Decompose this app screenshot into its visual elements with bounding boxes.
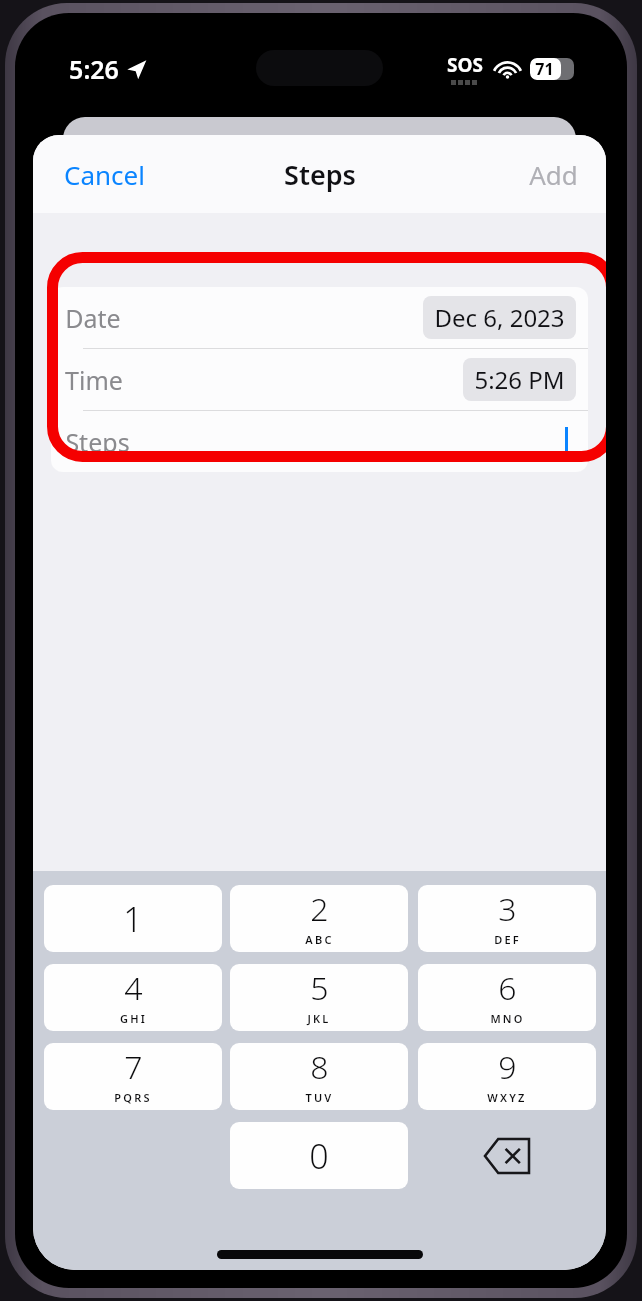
button[interactable]: 6 [418, 964, 596, 1031]
staticText: SOS [447, 52, 483, 78]
button[interactable]: 9 [418, 1043, 596, 1110]
staticText: MNO [490, 1011, 525, 1026]
button[interactable]: 4 [44, 964, 222, 1031]
staticText: Steps [65, 425, 130, 459]
button[interactable]: Cancel [58, 151, 151, 198]
button[interactable]: 5 [230, 964, 408, 1031]
staticText: 1 [123, 896, 143, 942]
staticText: 71 [535, 58, 554, 80]
staticText: 5 [310, 966, 329, 1010]
staticText: 2 [310, 887, 329, 931]
staticText: Date [65, 301, 121, 335]
staticText: JKL [307, 1011, 331, 1026]
staticText: ABC [305, 932, 334, 947]
staticText: DEF [494, 932, 521, 947]
button[interactable]: 0 [230, 1122, 408, 1189]
staticText: 6 [498, 966, 517, 1010]
staticText: 7 [124, 1045, 143, 1089]
staticText: 8 [310, 1045, 329, 1089]
button[interactable]: 5:26 PM [463, 358, 576, 401]
staticText: Dec 6, 2023 [434, 301, 565, 334]
staticText: 0 [309, 1133, 329, 1179]
button[interactable]: Add [523, 151, 584, 198]
staticText: Cancel [64, 157, 145, 192]
button[interactable]: 8 [230, 1043, 408, 1110]
button[interactable]: 2 [230, 885, 408, 952]
staticText: 5:26 [69, 52, 119, 86]
button[interactable]: Steps [51, 411, 588, 472]
staticText: Add [529, 157, 578, 192]
staticText: Steps [284, 156, 356, 193]
staticText: 9 [498, 1045, 517, 1089]
button[interactable]: 1 [44, 885, 222, 952]
staticText: PQRS [114, 1090, 152, 1105]
staticText: 5:26 PM [474, 363, 565, 396]
staticText: GHI [120, 1011, 147, 1026]
staticText: TUV [305, 1090, 334, 1105]
staticText: 4 [124, 966, 143, 1010]
staticText: Time [65, 363, 123, 397]
staticText: WXYZ [487, 1090, 527, 1105]
button[interactable]: 3 [418, 885, 596, 952]
button[interactable]: 7 [44, 1043, 222, 1110]
button[interactable]: Backspace [418, 1122, 596, 1189]
button[interactable]: Dec 6, 2023 [423, 296, 576, 339]
staticText: 3 [498, 887, 517, 931]
button[interactable]: Time [51, 349, 588, 410]
button[interactable]: Date [51, 287, 588, 348]
